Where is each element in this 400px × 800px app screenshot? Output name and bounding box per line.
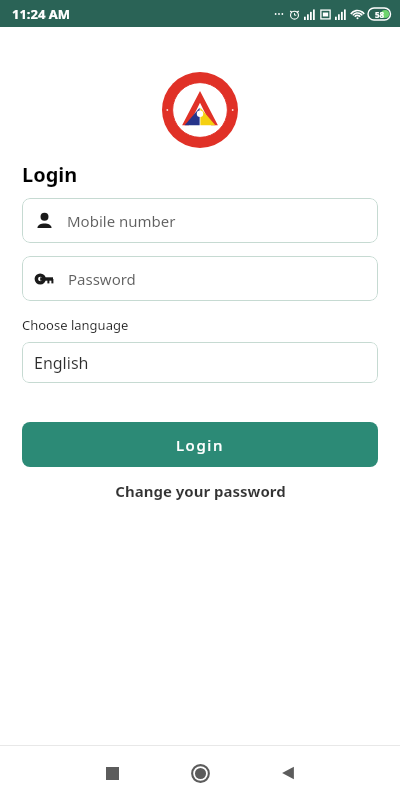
staticText: 11:24 AM	[12, 5, 71, 23]
button[interactable]: Password	[22, 256, 378, 301]
staticText: Login	[22, 161, 78, 188]
button[interactable]: English	[22, 342, 378, 383]
staticText: Mobile number	[67, 211, 176, 231]
staticText: English	[34, 352, 89, 374]
staticText: Password	[68, 269, 136, 289]
staticText: 58	[375, 9, 385, 20]
button[interactable]: Back	[266, 751, 310, 795]
button[interactable]: Login	[22, 422, 378, 467]
button[interactable]: Home	[178, 751, 222, 795]
button[interactable]: Change your password	[0, 477, 400, 505]
staticText: Choose language	[22, 316, 129, 334]
staticText: Change your password	[115, 481, 286, 501]
button[interactable]: Mobile number	[22, 198, 378, 243]
staticText: Login	[176, 435, 224, 455]
button[interactable]: Recent apps	[90, 751, 134, 795]
